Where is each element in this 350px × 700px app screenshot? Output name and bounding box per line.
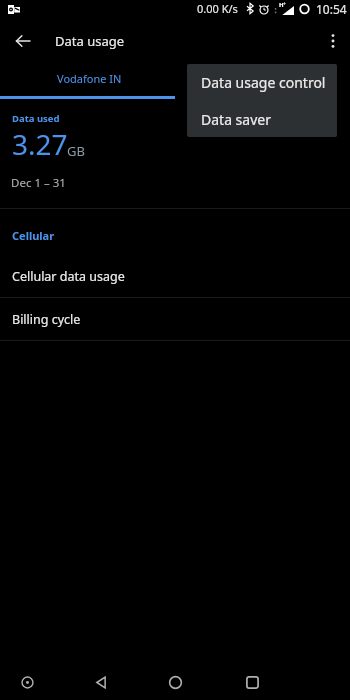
- staticText: Data usage: [55, 32, 125, 50]
- staticText: Vodafone IN: [57, 71, 122, 86]
- button[interactable]: Data usage control: [187, 64, 337, 101]
- staticText: Dec 1 – 31: [11, 175, 66, 191]
- staticText: Data used: [12, 112, 60, 125]
- staticText: 10:54: [316, 1, 347, 17]
- staticText: GB: [67, 142, 85, 160]
- button[interactable]: Billing cycle: [0, 297, 350, 341]
- staticText: Cellular data usage: [12, 268, 125, 285]
- staticText: 0.00 K/s: [197, 1, 238, 16]
- button[interactable]: Home: [156, 663, 194, 700]
- staticText: H: [279, 1, 284, 9]
- button[interactable]: Data saver: [187, 101, 337, 137]
- button[interactable]: More options: [315, 23, 350, 59]
- button[interactable]: Cellular data usage: [0, 254, 350, 298]
- button[interactable]: Vodafone IN: [0, 60, 175, 99]
- staticText: Cellular: [12, 228, 55, 243]
- button[interactable]: Screenshot: [8, 663, 46, 700]
- button[interactable]: Recent apps: [233, 663, 271, 700]
- staticText: Data saver: [201, 110, 271, 129]
- staticText: Data usage control: [201, 73, 326, 92]
- button[interactable]: Navigate up: [5, 23, 41, 59]
- staticText: 3.27: [12, 125, 68, 163]
- staticText: +: [283, 1, 286, 8]
- button[interactable]: Back: [82, 663, 120, 700]
- staticText: Billing cycle: [12, 311, 81, 328]
